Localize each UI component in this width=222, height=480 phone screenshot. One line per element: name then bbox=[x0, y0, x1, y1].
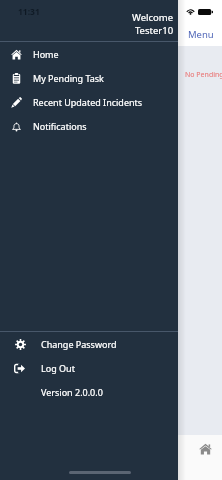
button[interactable]: Change Password bbox=[0, 332, 178, 356]
staticText: No Pending Task bbox=[185, 70, 222, 80]
staticText: My Pending Task bbox=[33, 72, 104, 84]
button[interactable]: Notifications bbox=[0, 114, 178, 138]
staticText: Change Password bbox=[41, 338, 117, 350]
button[interactable]: Recent Updated Incidents bbox=[0, 90, 178, 114]
button[interactable]: Home bbox=[0, 42, 178, 66]
button[interactable]: Log Out bbox=[0, 356, 178, 380]
staticText: Version 2.0.0.0 bbox=[41, 386, 103, 398]
staticText: Notifications bbox=[33, 120, 87, 132]
staticText: Home bbox=[33, 48, 59, 60]
button[interactable]: Menu bbox=[188, 28, 214, 41]
staticText: Welcome bbox=[132, 11, 174, 24]
staticText: Recent Updated Incidents bbox=[33, 96, 143, 108]
staticText: 11:31 bbox=[18, 6, 40, 18]
button[interactable]: Home bbox=[194, 438, 216, 460]
staticText: Log Out bbox=[41, 362, 75, 374]
button[interactable]: My Pending Task bbox=[0, 66, 178, 90]
staticText: Tester10 bbox=[135, 24, 174, 37]
staticText: Menu bbox=[188, 28, 214, 41]
